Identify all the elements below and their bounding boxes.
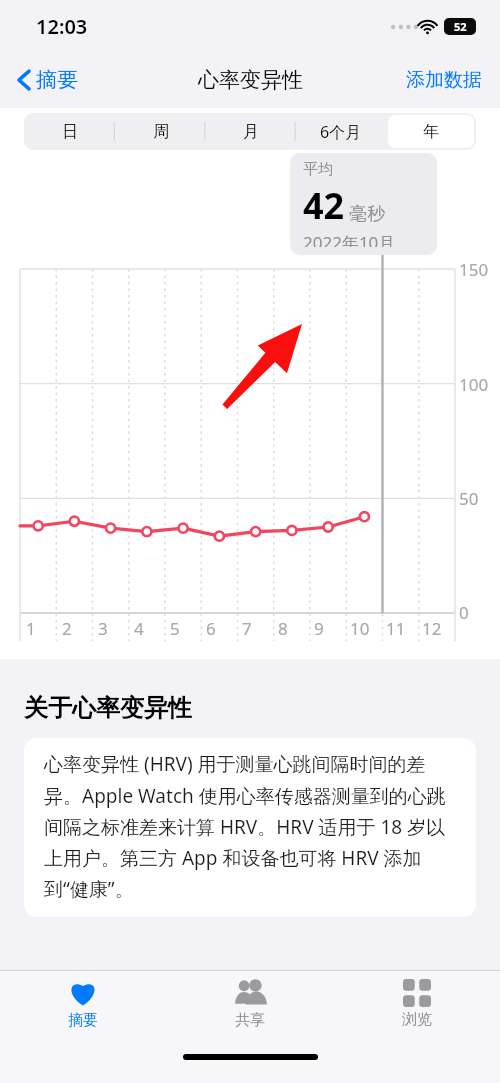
other: 摘要 (68, 979, 98, 1006)
staticText: 8 (278, 617, 288, 640)
staticText: 添加数据 (406, 68, 482, 92)
button[interactable]: 月 (208, 115, 294, 148)
staticText: 100 (459, 373, 489, 396)
other: 共享 (229, 979, 271, 1006)
button[interactable]: 年 (388, 115, 474, 148)
staticText: 7 (242, 617, 252, 640)
button[interactable]: 日 (26, 115, 113, 148)
staticText: 平均 (303, 160, 333, 179)
staticText: 周 (153, 122, 169, 142)
button[interactable]: 6个月 (298, 115, 384, 148)
staticText: 0 (459, 601, 469, 624)
staticText: 毫秒 (349, 203, 385, 226)
staticText: 12 (422, 617, 442, 640)
staticText: 心率变异性 (HRV) 用于测量心跳间隔时间的差异。Apple Watch 使用… (44, 751, 462, 901)
button[interactable]: 周 (117, 115, 204, 148)
staticText: 150 (459, 258, 489, 281)
staticText: 12:03 (36, 13, 88, 40)
staticText: 5 (170, 617, 180, 640)
staticText: 10 (350, 617, 370, 640)
other: 浏览 (403, 979, 431, 1005)
button[interactable]: 共享 (166, 971, 333, 1039)
staticText: 摘要 (36, 67, 78, 93)
staticText: 年 (423, 122, 439, 142)
staticText: 3 (98, 617, 108, 640)
staticText: 9 (314, 617, 324, 640)
button[interactable]: 添加数据 (402, 64, 486, 96)
staticText: 心率变异性 (198, 67, 303, 93)
staticText: 摘要 (68, 1011, 98, 1030)
staticText: 50 (459, 487, 479, 510)
staticText: 1 (26, 617, 36, 640)
staticText: 关于心率变异性 (24, 693, 192, 723)
staticText: 日 (62, 122, 78, 142)
staticText: 共享 (235, 1011, 265, 1030)
staticText: 月 (243, 122, 259, 142)
staticText: 6个月 (320, 121, 362, 143)
staticText: 4 (134, 617, 144, 640)
staticText: 42 (303, 181, 345, 230)
staticText: 2022年10月 (303, 231, 396, 247)
button[interactable]: 摘要 (12, 63, 84, 97)
staticText: 52 (454, 19, 467, 34)
staticText: 浏览 (402, 1010, 432, 1029)
button[interactable]: 摘要 (0, 971, 166, 1039)
staticText: 6 (206, 617, 216, 640)
staticText: 11 (386, 617, 406, 640)
staticText: 2 (62, 617, 72, 640)
button[interactable]: 浏览 (333, 971, 500, 1039)
